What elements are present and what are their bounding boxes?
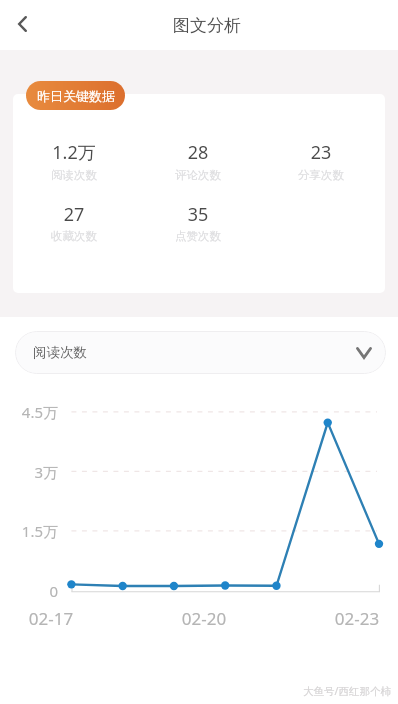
staticText: 大鱼号/西红那个柿 [303,684,391,698]
staticText: 27 [12,202,136,227]
button[interactable] [12,192,136,245]
staticText: 4.5万 [0,402,58,422]
staticText: 收藏次数 [12,229,136,243]
staticText: 图文分析 [107,15,307,36]
staticText: 昨日关键数据 [37,88,115,104]
button[interactable] [12,130,136,184]
staticText: 1.5万 [0,521,58,541]
staticText: 23 [259,140,383,165]
button[interactable] [136,192,260,245]
staticText: 3万 [0,462,58,482]
staticText: 35 [136,202,260,227]
button[interactable]: 昨日关键数据 [26,81,125,110]
staticText: 点赞次数 [136,229,260,243]
staticText: 1.2万 [12,140,136,165]
staticText: 分享次数 [259,168,383,182]
staticText: 02-17 [1,607,101,630]
staticText: 阅读次数 [12,168,136,182]
button[interactable] [136,130,260,184]
staticText: 评论次数 [136,168,260,182]
button[interactable] [259,130,383,184]
staticText: 阅读次数 [33,344,87,361]
staticText: 0 [0,581,58,601]
button[interactable]: 阅读次数 [15,331,386,374]
staticText: 02-23 [307,607,398,630]
staticText: 28 [136,140,260,165]
button[interactable]: Back [0,2,44,46]
staticText: 02-20 [154,607,254,630]
